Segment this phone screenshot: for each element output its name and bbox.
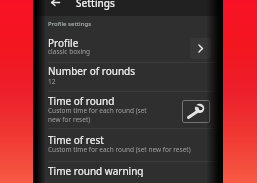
staticText: 12 [48, 77, 56, 86]
button[interactable]: Open profile [190, 38, 211, 59]
button[interactable]: Time of round [33, 94, 223, 107]
staticText: classic boxing [48, 47, 91, 56]
staticText: Custom time for each round (set new for … [48, 145, 191, 154]
staticText: Profile [48, 36, 79, 49]
button[interactable]: Number of rounds [33, 64, 223, 77]
button[interactable]: Time round warning [33, 164, 223, 177]
button[interactable]: Edit round time [182, 100, 210, 123]
button[interactable]: Profile [33, 36, 223, 49]
button[interactable]: Back [48, 0, 62, 9]
button[interactable]: Time of rest [33, 133, 223, 146]
staticText: Time of round [48, 94, 115, 107]
staticText: Time round warning [48, 164, 144, 177]
staticText: Time of rest [48, 133, 104, 146]
staticText: Settings [76, 0, 115, 10]
staticText: Number of rounds [48, 64, 136, 77]
staticText: Custom time for each round (set new for … [48, 106, 158, 124]
staticText: Profile settings [48, 20, 92, 28]
